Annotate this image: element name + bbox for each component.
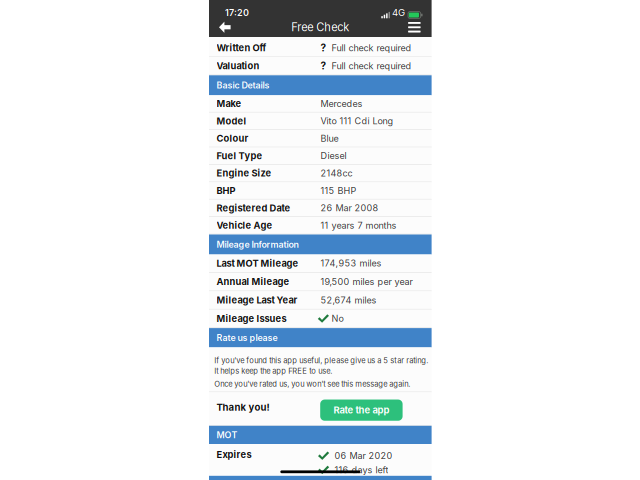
staticText: MOT — [216, 429, 237, 440]
staticText: Mileage Issues — [216, 313, 286, 324]
staticText: 11 years 7 months — [320, 220, 396, 231]
staticText: 2148cc — [320, 168, 352, 179]
staticText: Last MOT Mileage — [216, 258, 298, 269]
button[interactable]: Menu — [396, 18, 432, 37]
staticText: Mercedes — [320, 98, 362, 109]
staticText: Full check required — [331, 42, 411, 53]
button[interactable]: Back — [209, 18, 245, 37]
staticText: 52,674 miles — [320, 295, 376, 306]
staticText: 17:20 — [225, 7, 249, 18]
staticText: BHP — [216, 185, 235, 196]
staticText: Once you've rated us, you won't see this… — [214, 379, 410, 388]
staticText: Rate us please — [216, 332, 277, 343]
staticText: Thank you! — [216, 401, 269, 413]
staticText: Fuel Type — [216, 150, 262, 161]
staticText: Written Off — [216, 42, 266, 54]
staticText: 174,953 miles — [320, 258, 381, 269]
staticText: If you've found this app useful, please … — [214, 356, 428, 365]
staticText: Diesel — [320, 150, 346, 161]
staticText: Vito 111 Cdi Long — [320, 115, 393, 126]
staticText: Expires — [216, 449, 251, 460]
staticText: 115 BHP — [320, 185, 356, 196]
staticText: Valuation — [216, 60, 259, 71]
staticText: 26 Mar 2008 — [320, 202, 378, 213]
staticText: Colour — [216, 133, 248, 144]
staticText: Annual Mileage — [216, 276, 289, 287]
staticText: Make — [216, 98, 241, 109]
staticText: ? — [320, 42, 326, 54]
staticText: It helps keep the app FREE to use. — [214, 366, 332, 376]
staticText: Blue — [320, 133, 338, 144]
staticText: Rate the app — [333, 404, 389, 416]
staticText: Mileage Information — [216, 239, 298, 250]
staticText: 19,500 miles per year — [320, 276, 412, 287]
staticText: ? — [320, 60, 326, 72]
staticText: Engine Size — [216, 168, 271, 179]
staticText: Mileage Last Year — [216, 294, 297, 306]
staticText: 4G — [392, 7, 405, 18]
staticText: Basic Details — [216, 80, 269, 91]
staticText: 116 days left — [334, 464, 388, 475]
staticText: Model — [216, 115, 246, 127]
button[interactable]: Rate the app — [320, 396, 403, 421]
staticText: No — [331, 313, 343, 324]
staticText: Vehicle Age — [216, 220, 272, 231]
staticText: Free Check — [291, 21, 349, 34]
staticText: Full check required — [331, 60, 411, 71]
staticText: Registered Date — [216, 202, 290, 214]
staticText: 06 Mar 2020 — [334, 450, 392, 461]
